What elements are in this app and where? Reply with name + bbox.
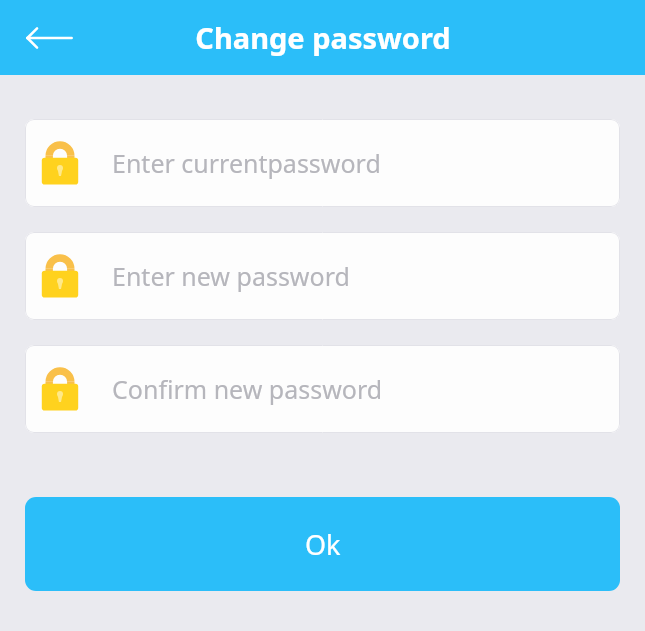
staticText: Enter currentpassword	[112, 146, 381, 180]
staticText: Ok	[305, 526, 341, 563]
staticText: Change password	[195, 18, 451, 57]
button[interactable]: Enter new password	[25, 232, 620, 320]
button[interactable]: Ok	[25, 497, 620, 591]
button[interactable]: Confirm new password	[25, 345, 620, 433]
button[interactable]: Enter currentpassword	[25, 119, 620, 207]
staticText: Enter new password	[112, 259, 350, 293]
staticText: Confirm new password	[112, 372, 383, 406]
button[interactable]: Back	[22, 15, 76, 61]
